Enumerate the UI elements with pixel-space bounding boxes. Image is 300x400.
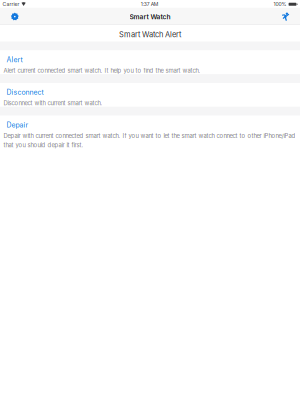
staticText: Carrier (2, 1, 19, 7)
staticText: that you should depair it first. (3, 141, 83, 149)
staticText: Depair (6, 121, 28, 129)
button[interactable]: Settings (4, 8, 26, 24)
staticText: Depair with current connected smart watc… (3, 132, 295, 139)
staticText: Smart Watch Alert (119, 30, 181, 39)
staticText: Disconnect with current smart watch. (3, 100, 102, 107)
staticText: Disconnect (6, 88, 43, 96)
button[interactable]: Activity (274, 8, 296, 24)
button[interactable]: Disconnect (0, 83, 300, 107)
staticText: 1:37 AM (141, 1, 159, 7)
button[interactable]: Alert (0, 50, 300, 74)
staticText: Smart Watch (129, 13, 170, 21)
staticText: Alert (6, 55, 22, 64)
staticText: Alert current connected smart watch. It … (3, 67, 200, 74)
button[interactable]: Depair (0, 116, 300, 147)
staticText: 100% (274, 1, 287, 7)
